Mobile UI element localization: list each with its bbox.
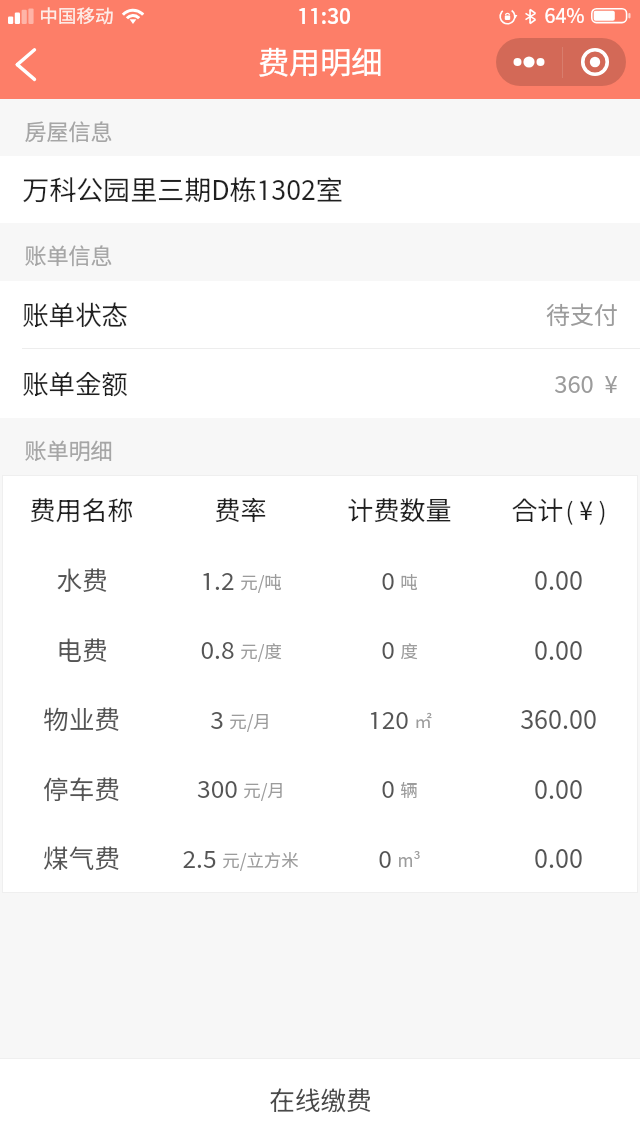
staticText: 元/月 (243, 780, 285, 801)
staticText: ¥ (579, 496, 593, 526)
staticText: 合计 (511, 495, 564, 526)
button[interactable]: 在线缴费 (0, 1059, 640, 1138)
staticText: 0.00 (534, 635, 583, 665)
button[interactable]: 账单金额 (0, 349, 640, 418)
staticText: 账单状态 (22, 299, 128, 330)
staticText: 元/月 (229, 711, 271, 732)
staticText: 元/立方米 (222, 850, 299, 871)
staticText: 物业费 (43, 704, 120, 734)
staticText: 账单信息 (24, 243, 113, 269)
staticText: 0 (381, 774, 395, 803)
staticText: 120 (368, 705, 409, 734)
button[interactable]: Close (563, 38, 626, 86)
staticText: 在线缴费 (269, 1085, 372, 1115)
staticText: 360.00 (520, 704, 597, 734)
staticText: 0 (381, 635, 395, 664)
staticText: ( (565, 497, 574, 525)
staticText: 0.00 (534, 565, 583, 595)
staticText: 电费 (56, 635, 108, 665)
staticText: 度 (400, 641, 418, 662)
staticText: 0 (381, 566, 395, 595)
button[interactable]: 账单状态 (0, 281, 640, 348)
staticText: 费率 (214, 495, 267, 526)
staticText: 0.8 (200, 635, 235, 664)
staticText: 费用明细 (258, 44, 382, 81)
staticText: 360 (554, 370, 594, 398)
staticText: 元/吨 (240, 572, 282, 593)
staticText: 11:30 (297, 4, 351, 29)
staticText: 房屋信息 (24, 119, 113, 145)
staticText: 0.00 (534, 843, 583, 873)
staticText: 1.2 (200, 566, 235, 595)
staticText: 账单金额 (22, 368, 128, 399)
staticText: 64% (544, 4, 585, 28)
button[interactable]: Back (0, 40, 52, 90)
staticText: 0 (378, 844, 392, 873)
staticText: 吨 (400, 572, 418, 593)
staticText: 停车费 (43, 774, 120, 804)
staticText: 3 (210, 705, 224, 734)
staticText: 水费 (56, 565, 108, 595)
staticText: ¥ (604, 370, 618, 398)
staticText: 300 (197, 774, 238, 803)
staticText: ㎡ (414, 711, 432, 732)
staticText: 待支付 (546, 301, 618, 329)
button[interactable]: 万科公园里三期D栋1302室 (0, 156, 640, 223)
staticText: 元/度 (240, 641, 282, 662)
staticText: 中国移动 (39, 5, 114, 27)
staticText: 2.5 (182, 844, 217, 873)
staticText: 账单明细 (24, 438, 113, 464)
staticText: 辆 (400, 780, 418, 801)
staticText: 计费数量 (347, 495, 452, 526)
staticText: 0.00 (534, 774, 583, 804)
button[interactable]: More (496, 38, 562, 86)
staticText: ) (598, 497, 607, 525)
staticText: 万科公园里三期D栋1302室 (22, 174, 343, 206)
staticText: 费用名称 (29, 495, 134, 526)
staticText: m³ (397, 850, 421, 871)
staticText: 煤气费 (43, 843, 120, 873)
